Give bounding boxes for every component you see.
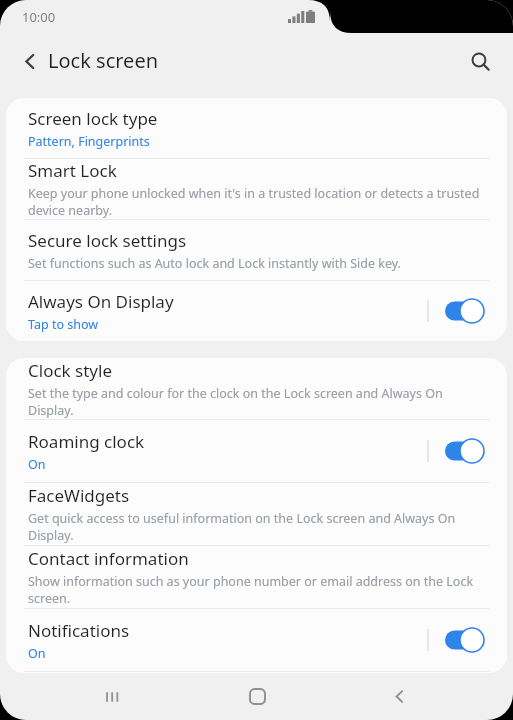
button[interactable]: Always On Display toggle bbox=[445, 298, 485, 324]
staticText: Lock screen bbox=[48, 47, 159, 74]
staticText: Set functions such as Auto lock and Lock… bbox=[28, 255, 401, 272]
button[interactable]: Roaming clock bbox=[6, 420, 507, 482]
staticText: On bbox=[28, 645, 46, 662]
staticText: Pattern, Fingerprints bbox=[28, 133, 150, 150]
button[interactable]: Back bbox=[12, 43, 48, 79]
button[interactable]: Back bbox=[371, 673, 427, 720]
staticText: Always On Display bbox=[28, 290, 174, 313]
staticText: FaceWidgets bbox=[28, 484, 130, 507]
staticText: Show information such as your phone numb… bbox=[28, 573, 485, 607]
staticText: 10:00 bbox=[22, 8, 56, 26]
staticText: Smart Lock bbox=[28, 159, 117, 182]
staticText: On bbox=[28, 456, 46, 473]
staticText: Get quick access to useful information o… bbox=[28, 510, 485, 544]
button[interactable]: FaceWidgets bbox=[6, 483, 507, 545]
staticText: Tap to show bbox=[28, 316, 99, 333]
button[interactable]: Always On Display bbox=[6, 281, 507, 341]
staticText: Keep your phone unlocked when it's in a … bbox=[28, 185, 485, 219]
button[interactable]: Secure lock settings bbox=[6, 220, 507, 280]
button[interactable]: Home bbox=[229, 673, 285, 720]
button[interactable]: Recents bbox=[86, 673, 142, 720]
button[interactable]: Smart Lock bbox=[6, 159, 507, 219]
staticText: Clock style bbox=[28, 359, 112, 382]
staticText: Roaming clock bbox=[28, 430, 145, 453]
button[interactable]: Roaming clock toggle bbox=[445, 438, 485, 464]
button[interactable]: Contact information bbox=[6, 546, 507, 608]
button[interactable]: Notifications bbox=[6, 609, 507, 671]
button[interactable]: Screen lock type bbox=[6, 98, 507, 158]
button[interactable]: Clock style bbox=[6, 358, 507, 419]
button[interactable]: Search bbox=[461, 42, 499, 80]
staticText: Secure lock settings bbox=[28, 229, 187, 252]
staticText: Contact information bbox=[28, 547, 189, 570]
staticText: Set the type and colour for the clock on… bbox=[28, 385, 485, 419]
staticText: Notifications bbox=[28, 619, 130, 642]
button[interactable]: Notifications toggle bbox=[445, 627, 485, 653]
staticText: Screen lock type bbox=[28, 107, 158, 130]
